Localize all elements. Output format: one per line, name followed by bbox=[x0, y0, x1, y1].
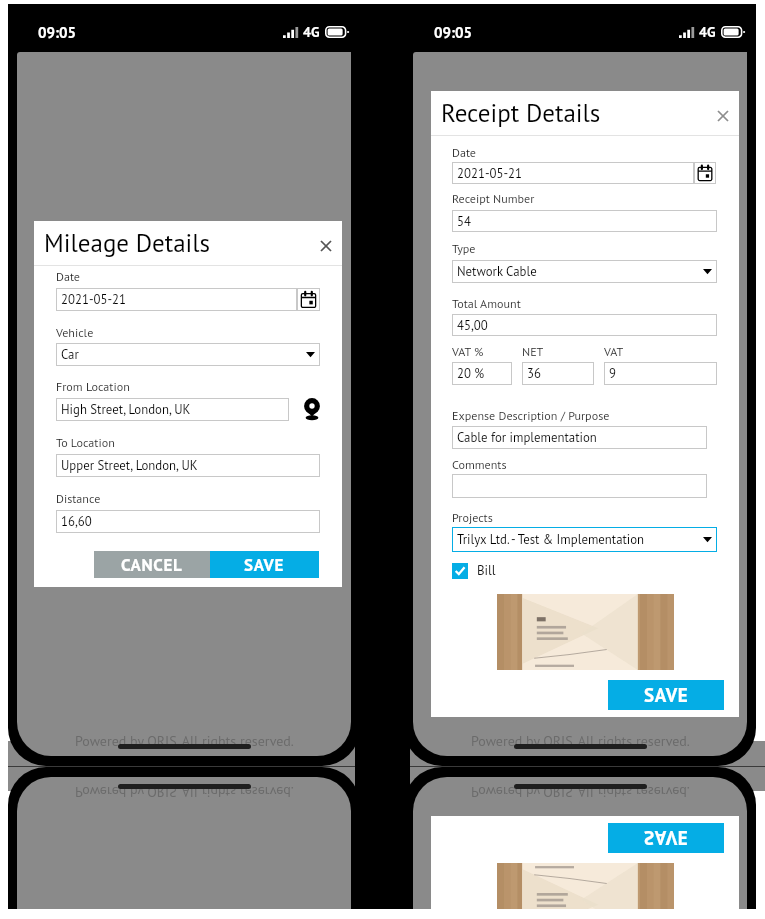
button[interactable]: Pick date bbox=[694, 162, 716, 184]
staticText: 4G bbox=[303, 23, 320, 41]
staticText: VAT bbox=[604, 344, 624, 360]
staticText: Date bbox=[56, 269, 81, 285]
staticText: SAVE bbox=[244, 554, 285, 576]
staticText: Trilyx Ltd. - Test & Implementation bbox=[457, 531, 645, 548]
staticText: Date bbox=[452, 145, 477, 161]
staticText: 16,60 bbox=[61, 513, 92, 530]
staticText: Powered by ORIS. All rights reserved. bbox=[75, 732, 294, 750]
staticText: Powered by ORIS. All rights reserved. bbox=[471, 783, 690, 801]
staticText: Distance bbox=[56, 491, 101, 507]
staticText: 4G bbox=[699, 23, 716, 41]
button[interactable]: 20 % bbox=[452, 362, 512, 385]
staticText: Mileage Details bbox=[44, 227, 211, 259]
button[interactable]: Close bbox=[313, 233, 339, 259]
staticText: From Location bbox=[56, 379, 130, 395]
staticText: Type bbox=[452, 241, 476, 257]
button[interactable]: Car bbox=[56, 343, 320, 366]
staticText: Vehicle bbox=[56, 325, 94, 341]
staticText: Total Amount bbox=[452, 296, 521, 312]
staticText: Powered by ORIS. All rights reserved. bbox=[75, 783, 294, 801]
button[interactable]: Close bbox=[710, 103, 736, 129]
button[interactable]: 2021-05-21 bbox=[56, 288, 297, 311]
staticText: 2021-05-21 bbox=[61, 291, 127, 308]
button[interactable]: Cable for implementation bbox=[452, 426, 707, 449]
staticText: Comments bbox=[452, 457, 507, 473]
button[interactable]: SAVE bbox=[608, 680, 724, 710]
button[interactable]: Network Cable bbox=[452, 260, 717, 283]
button[interactable]: Upper Street, London, UK bbox=[56, 454, 320, 477]
staticText: Bill bbox=[477, 562, 496, 579]
button[interactable]: CANCEL bbox=[94, 551, 210, 578]
staticText: 36 bbox=[527, 365, 541, 382]
staticText: High Street, London, UK bbox=[61, 401, 191, 418]
staticText: CANCEL bbox=[121, 554, 183, 576]
staticText: 45,00 bbox=[457, 317, 488, 334]
button[interactable]: High Street, London, UK bbox=[56, 398, 289, 421]
staticText: 09:05 bbox=[38, 23, 77, 42]
button[interactable] bbox=[452, 474, 707, 498]
staticText: 09:05 bbox=[434, 23, 473, 42]
staticText: 20 % bbox=[457, 365, 485, 382]
button[interactable]: Bill bbox=[452, 562, 496, 579]
button[interactable]: 54 bbox=[452, 210, 717, 232]
button[interactable]: 9 bbox=[604, 362, 717, 385]
staticText: 9 bbox=[609, 365, 616, 382]
staticText: Cable for implementation bbox=[457, 429, 597, 446]
button[interactable]: Pick location bbox=[299, 397, 325, 423]
staticText: 54 bbox=[457, 213, 471, 230]
staticText: 2021-05-21 bbox=[457, 165, 523, 182]
staticText: Car bbox=[61, 346, 79, 363]
button[interactable]: 36 bbox=[522, 362, 594, 385]
staticText: Expense Description / Purpose bbox=[452, 408, 610, 424]
staticText: NET bbox=[522, 344, 544, 360]
staticText: SAVE bbox=[644, 683, 689, 708]
staticText: Powered by ORIS. All rights reserved. bbox=[471, 732, 690, 750]
button[interactable]: 45,00 bbox=[452, 314, 717, 336]
staticText: Projects bbox=[452, 510, 493, 526]
staticText: Network Cable bbox=[457, 263, 537, 280]
button[interactable]: SAVE bbox=[210, 551, 319, 578]
button[interactable]: SAVE bbox=[608, 823, 724, 853]
staticText: To Location bbox=[56, 435, 115, 451]
button[interactable]: 2021-05-21 bbox=[452, 162, 694, 184]
staticText: VAT % bbox=[452, 344, 484, 360]
staticText: Receipt Number bbox=[452, 191, 535, 207]
button[interactable]: 16,60 bbox=[56, 510, 320, 533]
staticText: Upper Street, London, UK bbox=[61, 457, 198, 474]
staticText: Receipt Details bbox=[441, 97, 601, 129]
button[interactable]: Trilyx Ltd. - Test & Implementation bbox=[452, 527, 717, 552]
staticText: SAVE bbox=[644, 825, 689, 850]
button[interactable]: Pick date bbox=[297, 288, 320, 311]
